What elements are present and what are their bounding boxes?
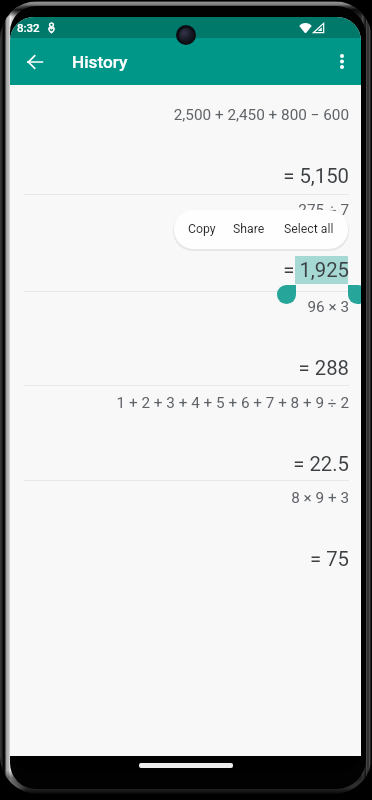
button[interactable]: [10, 386, 361, 480]
staticText: = 1,925: [24, 258, 349, 282]
staticText: Select all: [284, 222, 334, 236]
staticText: 2,500 + 2,450 + 800 − 600: [24, 106, 349, 124]
staticText: 96 × 3: [24, 298, 349, 316]
button[interactable]: More options: [321, 39, 361, 84]
button[interactable]: Copy: [176, 210, 228, 248]
button[interactable]: [10, 481, 361, 580]
staticText: = 5,150: [24, 164, 349, 188]
staticText: = 288: [24, 356, 349, 380]
staticText: 8:32: [17, 21, 40, 34]
button[interactable]: [10, 292, 361, 385]
staticText: = 75: [24, 547, 349, 571]
staticText: 1 + 2 + 3 + 4 + 5 + 6 + 7 + 8 + 9 ÷ 2: [24, 394, 349, 412]
button[interactable]: Selection end handle: [348, 285, 361, 304]
button[interactable]: Share: [221, 210, 276, 248]
button[interactable]: [10, 85, 361, 194]
staticText: 1,925: [24, 258, 349, 282]
button[interactable]: Select all: [272, 210, 346, 248]
button[interactable]: Selection start handle: [277, 285, 296, 304]
staticText: Share: [233, 222, 265, 236]
staticText: 8 × 9 + 3: [24, 489, 349, 507]
staticText: 275 ÷ 7: [24, 201, 349, 219]
staticText: Copy: [188, 222, 216, 236]
button[interactable]: Navigate up: [12, 39, 57, 84]
button[interactable]: [10, 195, 361, 290]
staticText: History: [72, 52, 128, 72]
staticText: = 22.5: [24, 452, 349, 476]
